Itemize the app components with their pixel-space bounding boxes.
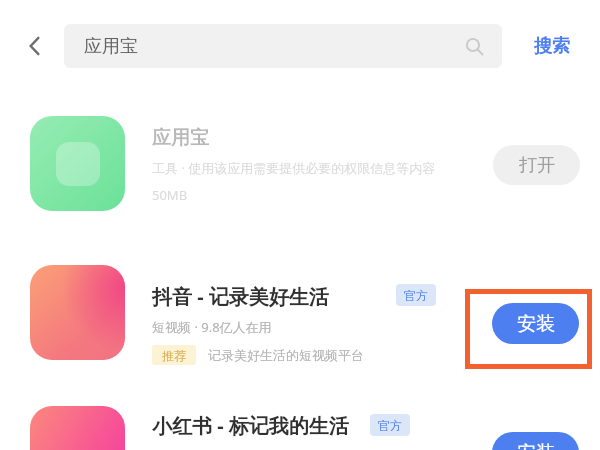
button[interactable] xyxy=(0,384,600,450)
button[interactable]: Back xyxy=(12,23,58,69)
staticText: 官方 xyxy=(378,418,402,433)
staticText: 安装 xyxy=(517,441,555,450)
button[interactable] xyxy=(0,94,600,236)
staticText: 抖音 - 记录美好生活 xyxy=(152,283,329,310)
staticText: 50MB xyxy=(152,186,188,204)
button[interactable]: 应用宝 xyxy=(64,24,502,68)
staticText: 记录美好生活的短视频平台 xyxy=(208,347,364,363)
staticText: 应用宝 xyxy=(152,126,209,150)
button[interactable] xyxy=(0,243,600,385)
staticText: 搜索 xyxy=(534,35,570,58)
staticText: 打开 xyxy=(519,154,555,177)
staticText: 短视频 · 9.8亿人在用 xyxy=(152,318,272,336)
staticText: 安装 xyxy=(517,312,555,336)
button[interactable]: 搜索 xyxy=(516,24,588,68)
button[interactable]: 打开 xyxy=(493,145,580,185)
staticText: 小红书 - 标记我的生活 xyxy=(152,412,349,439)
staticText: 工具 · 使用该应用需要提供必要的权限信息等内容 xyxy=(152,159,436,177)
staticText: 推荐 xyxy=(162,348,186,363)
button[interactable]: 安装 xyxy=(492,303,579,344)
staticText: 官方 xyxy=(404,288,428,303)
staticText: 应用宝 xyxy=(84,35,138,58)
button[interactable]: 安装 xyxy=(492,432,579,450)
